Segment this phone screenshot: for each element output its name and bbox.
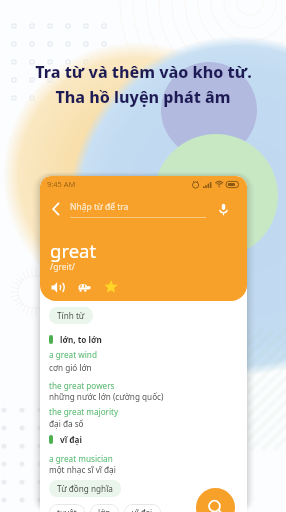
staticText: lớn [98,507,111,512]
button[interactable]: Back [46,199,66,219]
button[interactable]: Slow pronunciation [76,279,92,295]
staticText: Tra từ và thêm vào kho từ. [35,61,252,83]
button[interactable]: tuyệt [49,504,85,512]
staticText: những nước lớn (cường quốc) [49,391,164,402]
staticText: the great majority [49,406,119,417]
staticText: great [50,238,97,263]
staticText: đại đa số [49,418,84,429]
button[interactable]: Voice search [215,201,231,217]
button[interactable]: Từ đồng nghĩa [49,480,121,497]
staticText: lớn, to lớn [60,334,102,345]
staticText: Từ đồng nghĩa [57,483,113,494]
button[interactable]: Tính từ [49,307,93,324]
staticText: tuyệt [57,507,77,512]
staticText: cơn gió lớn [49,362,92,373]
button[interactable]: Play pronunciation [49,279,65,295]
staticText: Tính từ [57,310,85,321]
staticText: a great wind [49,349,97,360]
button[interactable]: lớn [90,504,119,512]
staticText: Tha hồ luyện phát âm [55,86,231,108]
staticText: vĩ đại [132,507,153,512]
button[interactable]: vĩ đại [124,504,161,512]
staticText: a great musician [49,453,113,464]
staticText: vĩ đại [60,434,82,445]
staticText: the great powers [49,380,115,391]
button[interactable]: Search [196,488,235,512]
staticText: /greit/ [50,261,75,273]
staticText: 9:45 AM [47,179,76,189]
button[interactable]: Bookmark [103,279,119,295]
staticText: một nhạc sĩ vĩ đại [49,464,116,475]
staticText: Nhập từ để tra [70,201,129,213]
